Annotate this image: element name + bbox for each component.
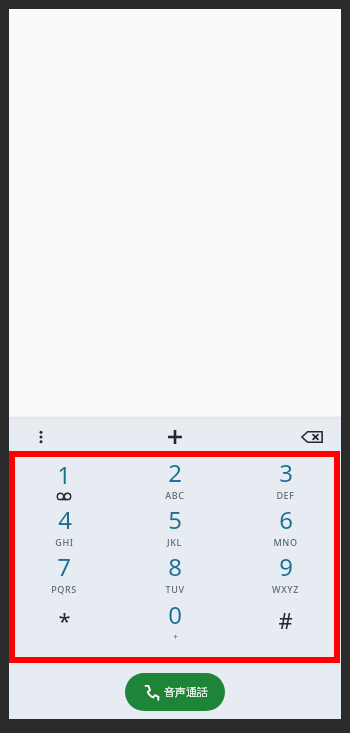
staticText: TUV	[165, 583, 185, 595]
button[interactable]: 5	[119, 502, 230, 549]
button[interactable]: 9	[230, 549, 341, 596]
staticText: ABC	[165, 489, 185, 501]
staticText: #	[278, 605, 293, 635]
button[interactable]: 3	[230, 455, 341, 502]
button[interactable]: 2	[119, 455, 230, 502]
staticText: 3	[279, 456, 293, 489]
button[interactable]: *	[9, 596, 119, 643]
staticText: 1	[57, 458, 71, 491]
staticText: 音声通話	[164, 685, 208, 699]
button[interactable]: 0	[119, 596, 230, 643]
staticText: +	[173, 631, 178, 642]
button[interactable]: 8	[119, 549, 230, 596]
staticText: 0	[168, 598, 182, 631]
staticText: 2	[168, 456, 182, 489]
staticText: *	[58, 605, 71, 635]
button[interactable]: More options	[25, 421, 57, 453]
staticText: WXYZ	[272, 583, 299, 595]
button[interactable]: 4	[9, 502, 119, 549]
staticText: 7	[57, 550, 71, 583]
staticText: 5	[168, 503, 182, 536]
staticText: DEF	[276, 489, 295, 501]
staticText: 6	[279, 503, 293, 536]
button[interactable]: 6	[230, 502, 341, 549]
button[interactable]: 1	[9, 455, 119, 502]
staticText: GHI	[55, 536, 74, 548]
staticText: PQRS	[51, 583, 77, 595]
staticText: JKL	[167, 536, 182, 548]
staticText: 9	[279, 550, 293, 583]
button[interactable]: Backspace	[295, 420, 329, 454]
button[interactable]: 音声通話	[125, 673, 225, 711]
button[interactable]: 7	[9, 549, 119, 596]
button[interactable]: #	[230, 596, 341, 643]
button[interactable]: Add	[155, 419, 195, 455]
staticText: 8	[168, 550, 182, 583]
staticText: 4	[58, 503, 72, 536]
staticText: MNO	[273, 536, 298, 548]
